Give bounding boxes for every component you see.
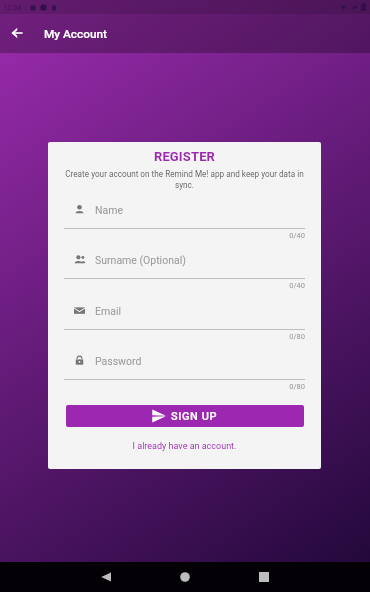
button[interactable]: Surname (Optional) — [64, 246, 305, 273]
staticText: 0/80 — [64, 332, 305, 341]
staticText: 0/80 — [64, 382, 305, 391]
button[interactable]: Email — [64, 297, 305, 324]
button[interactable]: I already have an account. — [48, 441, 321, 452]
button[interactable]: Name — [64, 196, 305, 223]
button[interactable]: Recent apps — [249, 562, 279, 592]
staticText: SIGN UP — [171, 410, 218, 423]
button[interactable]: Back — [3, 19, 31, 47]
staticText: 0/40 — [64, 231, 305, 240]
staticText: My Account — [44, 27, 107, 41]
staticText: REGISTER — [48, 149, 321, 164]
button[interactable]: Home — [170, 562, 200, 592]
button[interactable]: Back — [91, 562, 121, 592]
button[interactable]: Password — [64, 347, 305, 374]
staticText: Surname (Optional) — [95, 254, 186, 266]
staticText: Name — [95, 204, 123, 216]
button[interactable]: SIGN UP — [66, 405, 304, 427]
staticText: Create your account on the Remind Me! ap… — [62, 169, 307, 190]
staticText: 12:34 — [3, 3, 22, 12]
staticText: Password — [95, 355, 142, 367]
staticText: Email — [95, 305, 121, 317]
staticText: 0/40 — [64, 281, 305, 290]
